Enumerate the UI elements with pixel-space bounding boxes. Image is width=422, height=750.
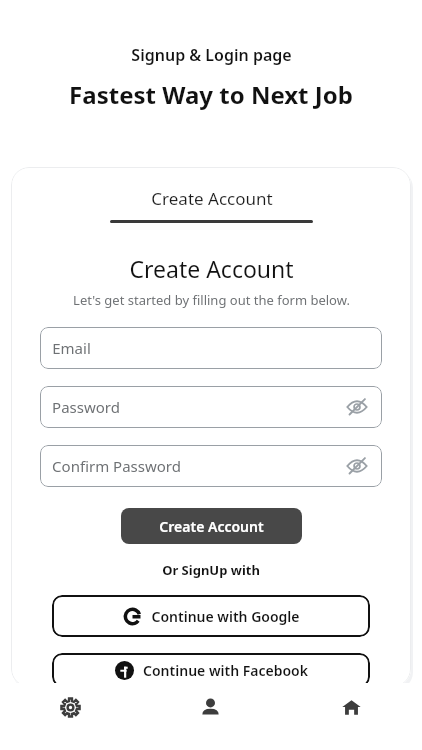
button[interactable]: Email <box>40 327 382 369</box>
staticText: Create Account <box>159 517 264 536</box>
button[interactable]: Create Account <box>121 508 302 544</box>
button[interactable]: Create Account <box>86 187 337 223</box>
button[interactable]: Profile <box>140 683 281 731</box>
staticText: Create Account <box>129 253 294 284</box>
staticText: Email <box>52 338 91 358</box>
staticText: Confirm Password <box>52 456 181 476</box>
button[interactable]: Toggle password visibility <box>346 396 368 418</box>
button[interactable]: Settings <box>0 683 140 731</box>
staticText: Let's get started by filling out the for… <box>73 291 350 309</box>
button[interactable]: Password <box>40 386 382 428</box>
staticText: Continue with Facebook <box>143 661 308 680</box>
staticText: Or SignUp with <box>162 561 260 579</box>
button[interactable]: Continue with Facebook <box>52 653 370 687</box>
staticText: Continue with Google <box>151 607 300 626</box>
staticText: Create Account <box>151 187 273 210</box>
staticText: Signup & Login page <box>131 44 292 66</box>
button[interactable]: Toggle password visibility <box>346 455 368 477</box>
staticText: Fastest Way to Next Job <box>69 78 353 111</box>
button[interactable]: Home <box>281 683 422 731</box>
button[interactable]: Confirm Password <box>40 445 382 487</box>
staticText: Password <box>52 397 120 417</box>
button[interactable]: Continue with Google <box>52 595 370 637</box>
